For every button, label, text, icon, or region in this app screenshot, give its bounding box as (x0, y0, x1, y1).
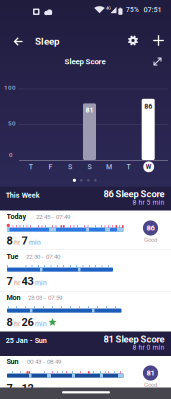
staticText: Good (144, 381, 157, 388)
staticText: min (35, 320, 47, 328)
button[interactable]: Today (0, 0, 171, 399)
staticText: min (29, 238, 41, 246)
staticText: 81 (85, 106, 93, 114)
button[interactable]: Tue (0, 0, 171, 399)
staticText: T (127, 163, 131, 171)
staticText: 7 (21, 234, 27, 247)
staticText: 86 Sleep Score (103, 189, 164, 200)
staticText: 7 (6, 382, 12, 395)
staticText: 86 (144, 102, 152, 110)
staticText: 00:43 - 08:49 (27, 358, 61, 365)
staticText: hr (14, 386, 20, 394)
button[interactable]: Settings (0, 0, 171, 399)
staticText: 4G (106, 5, 111, 10)
staticText: 100 (4, 84, 16, 91)
button[interactable]: Sun (0, 0, 171, 399)
staticText: 8 (6, 234, 12, 247)
staticText: Sun (6, 357, 18, 366)
staticText: hr (14, 238, 20, 246)
staticText: S (68, 163, 72, 171)
button[interactable]: Mon (0, 0, 171, 399)
staticText: 22:45 - 07:49 (36, 213, 70, 220)
staticText: 12 (21, 382, 33, 395)
staticText: 23:03 - 07:59 (28, 294, 62, 301)
staticText: F (48, 163, 52, 171)
staticText: hr (14, 279, 20, 287)
staticText: 81 Sleep Score (103, 334, 164, 345)
staticText: 86 (146, 223, 154, 232)
staticText: This Week (6, 191, 40, 200)
staticText: Sleep (35, 36, 60, 47)
staticText: T (29, 163, 33, 171)
staticText: 75% (126, 6, 139, 14)
button[interactable]: Back (0, 0, 171, 399)
staticText: Good (144, 236, 157, 243)
staticText: 8 hr 5 min (132, 198, 164, 206)
staticText: Mon (6, 293, 20, 302)
staticText: W (146, 163, 152, 171)
staticText: 50 (8, 120, 16, 127)
staticText: Today (6, 212, 26, 221)
button[interactable]: Expand chart (0, 0, 171, 399)
staticText: 25 Jan - Sun (6, 336, 47, 345)
staticText: 07:51 (143, 5, 161, 14)
staticText: min (35, 279, 47, 287)
staticText: 81 (146, 368, 154, 377)
staticText: 43 (21, 275, 33, 288)
staticText: 0 (9, 151, 13, 159)
staticText: S (87, 163, 91, 171)
staticText: Tue (6, 252, 18, 261)
staticText: 7 (6, 275, 12, 288)
staticText: Sleep Score (64, 57, 105, 66)
staticText: 22:30 - 07:40 (26, 253, 60, 260)
staticText: hr (14, 320, 20, 328)
button[interactable]: Add (0, 0, 171, 399)
staticText: 26 (21, 316, 33, 329)
staticText: 8 hr 0 min (132, 344, 164, 352)
staticText: M (106, 163, 112, 171)
staticText: 8 (6, 316, 12, 329)
staticText: min (35, 386, 47, 394)
